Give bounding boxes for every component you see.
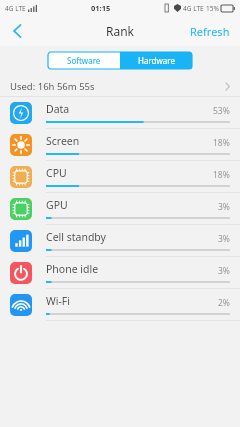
staticText: 3%	[218, 201, 230, 213]
staticText: 3%	[218, 265, 230, 277]
button[interactable]: CPU	[0, 161, 240, 193]
staticText: GPU	[46, 198, 68, 212]
staticText: Wi-Fi	[46, 294, 71, 308]
staticText: 3%	[218, 233, 230, 245]
button[interactable]: Hardware	[120, 52, 192, 69]
staticText: 01:15	[91, 3, 111, 13]
button[interactable]: Software	[48, 52, 120, 69]
staticText: Screen	[46, 134, 80, 148]
button[interactable]: Refresh	[180, 16, 240, 46]
staticText: Hardware	[138, 55, 175, 66]
button[interactable]: Cell standby	[0, 225, 240, 257]
button[interactable]: Back	[0, 16, 34, 46]
staticText: 4G LTE	[5, 4, 26, 13]
button[interactable]: Used: 16h 56m 55s	[0, 76, 240, 96]
staticText: 2%	[218, 297, 230, 309]
staticText: Cell standby	[46, 230, 106, 244]
staticText: Software	[67, 55, 101, 66]
button[interactable]: Wi-Fi	[0, 289, 240, 321]
staticText: 4G LTE	[183, 4, 204, 13]
button[interactable]: Screen	[0, 129, 240, 161]
staticText: Rank	[106, 23, 135, 39]
staticText: 15%	[206, 4, 219, 13]
staticText: 18%	[213, 169, 230, 181]
staticText: 53%	[213, 105, 230, 117]
staticText: 18%	[213, 137, 230, 149]
button[interactable]: Phone idle	[0, 257, 240, 289]
staticText: Phone idle	[46, 262, 99, 276]
button[interactable]: Data	[0, 97, 240, 129]
staticText: CPU	[46, 166, 67, 180]
staticText: Data	[46, 102, 70, 116]
staticText: Refresh	[190, 24, 230, 39]
button[interactable]: GPU	[0, 193, 240, 225]
staticText: Used: 16h 56m 55s	[10, 80, 95, 93]
